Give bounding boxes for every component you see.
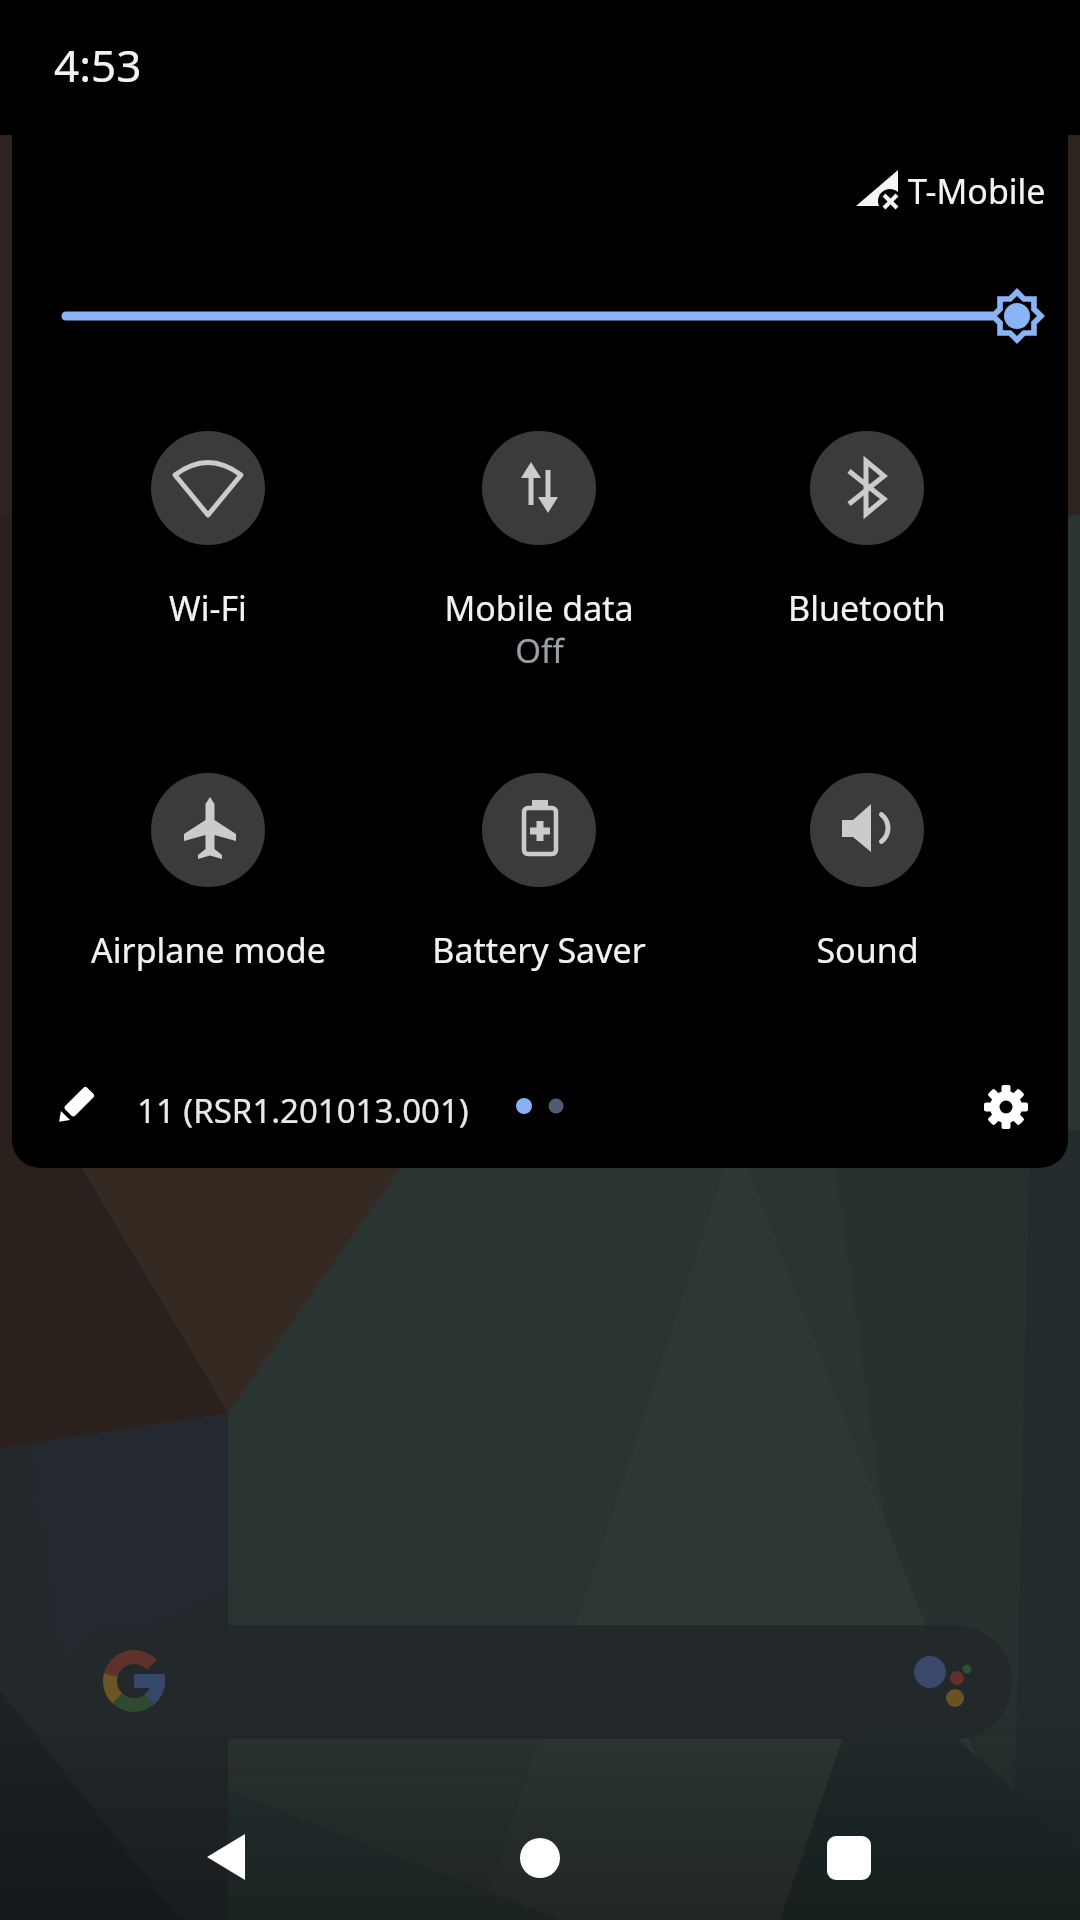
button[interactable] xyxy=(727,430,1007,680)
button[interactable] xyxy=(68,772,348,1002)
button[interactable] xyxy=(494,1815,586,1905)
button[interactable] xyxy=(65,1625,1012,1739)
staticText: Battery Saver xyxy=(432,927,646,973)
button[interactable] xyxy=(399,772,679,1002)
staticText: Airplane mode xyxy=(91,927,326,973)
staticText: Off xyxy=(515,628,564,673)
staticText: Sound xyxy=(816,927,919,973)
button[interactable] xyxy=(399,430,679,680)
staticText: Bluetooth xyxy=(788,585,946,631)
staticText: Mobile data xyxy=(444,585,634,631)
button[interactable] xyxy=(180,1815,272,1905)
button[interactable] xyxy=(802,1815,894,1905)
button[interactable] xyxy=(972,1074,1040,1140)
staticText: 11 (RSR1.201013.001) xyxy=(137,1088,469,1133)
button[interactable] xyxy=(40,1074,108,1140)
staticText: Wi-Fi xyxy=(169,585,247,631)
staticText: T-Mobile xyxy=(908,168,1046,214)
button[interactable] xyxy=(727,772,1007,1002)
button[interactable] xyxy=(68,430,348,680)
button[interactable] xyxy=(40,270,1040,362)
staticText: 4:53 xyxy=(54,35,142,95)
